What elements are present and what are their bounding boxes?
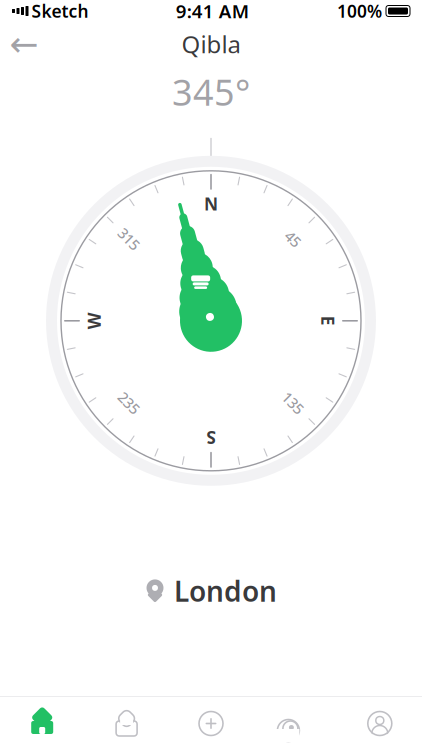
staticText: ← (9, 24, 38, 64)
button[interactable]: Profile (338, 698, 422, 748)
staticText: 9:41 AM (176, 0, 249, 23)
staticText: London (174, 572, 277, 609)
staticText: 100% (337, 0, 382, 22)
button[interactable]: London (131, 564, 291, 617)
staticText: N (204, 192, 218, 215)
staticText: 235 (199, 195, 223, 215)
button[interactable]: Home (0, 698, 84, 748)
button[interactable]: Back (0, 22, 48, 66)
staticText: 315 (199, 195, 223, 215)
staticText: 345° (172, 68, 250, 116)
staticText: W (202, 192, 219, 215)
staticText: Sketch (31, 0, 88, 22)
staticText: S (206, 192, 216, 215)
staticText: Qibla (181, 28, 240, 60)
staticText: E (206, 192, 216, 215)
staticText: 135 (199, 195, 223, 215)
button[interactable]: Qibla (253, 698, 338, 748)
staticText: 45 (203, 195, 219, 215)
button[interactable]: Mosques (84, 698, 169, 748)
button[interactable]: Add (169, 698, 253, 748)
